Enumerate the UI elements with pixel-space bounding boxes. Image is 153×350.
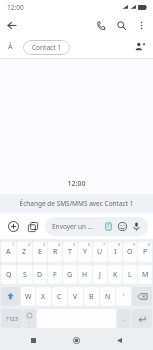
button[interactable]: U bbox=[93, 242, 107, 262]
staticText: ' bbox=[123, 292, 125, 302]
button[interactable]: N bbox=[100, 287, 115, 306]
staticText: Contact 1 bbox=[32, 43, 61, 52]
button[interactable]: ?123 bbox=[1, 309, 22, 328]
button[interactable]: Add bbox=[5, 218, 22, 235]
button[interactable]: ' bbox=[116, 287, 131, 306]
staticText: 1 bbox=[12, 242, 15, 247]
staticText: 4 bbox=[58, 242, 61, 247]
staticText: N bbox=[105, 292, 111, 302]
button[interactable]: Shift bbox=[1, 287, 20, 306]
button[interactable]: Y bbox=[78, 242, 92, 262]
button[interactable]: Search bbox=[111, 15, 131, 35]
button[interactable]: Call bbox=[91, 15, 111, 35]
button[interactable]: W bbox=[21, 287, 35, 306]
staticText: P bbox=[143, 247, 148, 257]
button[interactable]: X bbox=[36, 287, 51, 306]
staticText: R bbox=[53, 247, 58, 257]
button[interactable]: Contact 1 bbox=[23, 40, 70, 55]
staticText: 6 bbox=[88, 242, 91, 247]
staticText: , bbox=[29, 318, 31, 324]
button[interactable]: R bbox=[48, 242, 62, 262]
button[interactable]: B bbox=[84, 287, 99, 306]
staticText: 2 bbox=[28, 242, 31, 247]
button[interactable]: Q bbox=[1, 265, 16, 284]
button[interactable]: V bbox=[68, 287, 83, 306]
staticText: 1 bbox=[107, 223, 110, 230]
staticText: À bbox=[8, 42, 13, 52]
button[interactable]: G bbox=[63, 265, 77, 284]
button[interactable]: Z bbox=[17, 242, 32, 262]
button[interactable]: A bbox=[1, 242, 16, 262]
button[interactable]: Gallery bbox=[24, 218, 41, 235]
button[interactable]: O bbox=[123, 242, 137, 262]
button[interactable]: Recent apps bbox=[24, 331, 43, 350]
staticText: I bbox=[114, 247, 117, 257]
staticText: 12:00 bbox=[0, 179, 153, 189]
button[interactable]: I bbox=[108, 242, 122, 262]
button[interactable]: F bbox=[48, 265, 62, 284]
staticText: C bbox=[57, 292, 62, 302]
button[interactable]: , bbox=[117, 309, 130, 328]
staticText: J bbox=[99, 270, 101, 280]
staticText: Envoyer un ... bbox=[52, 222, 104, 231]
staticText: V bbox=[73, 292, 78, 302]
staticText: Q bbox=[6, 270, 12, 280]
staticText: D bbox=[37, 270, 43, 280]
staticText: , bbox=[123, 315, 125, 323]
button[interactable]: More options bbox=[131, 15, 151, 35]
staticText: W bbox=[25, 292, 32, 302]
button[interactable]: Backspace bbox=[132, 287, 152, 306]
button[interactable]: Home bbox=[67, 331, 86, 350]
staticText: B bbox=[89, 292, 94, 302]
button[interactable]: S bbox=[17, 265, 32, 284]
staticText: Z bbox=[22, 247, 27, 257]
button[interactable]: H bbox=[78, 265, 92, 284]
staticText: F bbox=[53, 270, 57, 280]
staticText: X bbox=[41, 292, 46, 302]
staticText: A bbox=[6, 247, 11, 257]
other: Emoji bbox=[118, 222, 127, 231]
staticText: K bbox=[113, 270, 118, 280]
other: Voice bbox=[132, 222, 141, 231]
button[interactable]: C bbox=[52, 287, 67, 306]
staticText: G bbox=[67, 270, 73, 280]
button[interactable]: Envoyer un ... bbox=[45, 217, 148, 236]
button[interactable]: K bbox=[108, 265, 122, 284]
staticText: S bbox=[23, 270, 27, 280]
staticText: T bbox=[68, 247, 72, 257]
button[interactable]: M bbox=[138, 265, 152, 284]
button[interactable]: D bbox=[33, 265, 47, 284]
button[interactable]: T bbox=[63, 242, 77, 262]
staticText: 5 bbox=[73, 242, 76, 247]
button[interactable]: Emoji keyboard bbox=[23, 309, 36, 328]
staticText: 7 bbox=[103, 242, 106, 247]
other: SIM bbox=[104, 222, 113, 231]
staticText: 8 bbox=[118, 242, 121, 247]
staticText: 3 bbox=[43, 242, 46, 247]
staticText: M bbox=[142, 270, 149, 280]
button[interactable]: E bbox=[33, 242, 47, 262]
button[interactable]: Back bbox=[0, 14, 22, 36]
staticText: Y bbox=[83, 247, 87, 257]
button[interactable]: Add recipient bbox=[130, 37, 150, 57]
staticText: Échange de SMS/MMS avec Contact 1 bbox=[0, 199, 153, 208]
staticText: E bbox=[38, 247, 42, 257]
staticText: H bbox=[82, 270, 88, 280]
staticText: 12:00 bbox=[7, 3, 24, 12]
button[interactable]: L bbox=[123, 265, 137, 284]
button[interactable]: P bbox=[138, 242, 152, 262]
staticText: ?123 bbox=[6, 315, 18, 322]
button[interactable]: J bbox=[93, 265, 107, 284]
button[interactable]: Enter bbox=[131, 309, 152, 328]
staticText: 9 bbox=[133, 242, 136, 247]
staticText: L bbox=[128, 270, 132, 280]
staticText: 0 bbox=[148, 242, 151, 247]
button[interactable]: Back bbox=[110, 331, 129, 350]
staticText: U bbox=[97, 247, 103, 257]
staticText: O bbox=[127, 247, 133, 257]
